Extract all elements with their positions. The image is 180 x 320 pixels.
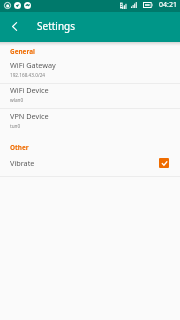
staticText: WiFi Device [10,85,49,95]
button[interactable]: VPN Device [0,111,180,135]
button[interactable]: Back [0,11,28,41]
staticText: WiFi Gateway [10,60,56,70]
staticText: 04:21 [159,0,177,10]
staticText: General [10,47,35,56]
staticText: wlan0 [10,97,24,103]
button[interactable]: Vibrate [0,153,180,173]
button[interactable]: WiFi Device [0,85,180,109]
staticText: Vibrate [10,158,35,168]
staticText: 192.168.43.0/24 [10,72,46,78]
staticText: Settings [37,19,76,33]
button[interactable]: WiFi Gateway [0,60,180,84]
staticText: tun0 [10,123,21,129]
staticText: Other [10,143,29,152]
staticText: VPN Device [10,111,49,121]
